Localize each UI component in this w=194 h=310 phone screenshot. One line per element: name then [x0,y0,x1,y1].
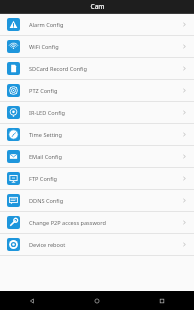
button[interactable]: Device reboot [0,234,194,255]
button[interactable]: SDCard Record Config [0,58,194,79]
staticText: Device reboot [29,241,66,249]
button[interactable]: WiFi Config [0,36,194,57]
button[interactable]: PTZ Config [0,80,194,101]
button[interactable]: Home [64,291,129,310]
button[interactable]: IR-LED Config [0,102,194,123]
staticText: FTP Config [29,175,58,183]
button[interactable]: Recent apps [129,291,194,310]
staticText: DDNS Config [29,197,64,205]
button[interactable]: Change P2P access password [0,212,194,233]
staticText: Cam [90,2,105,11]
button[interactable]: Alarm Config [0,14,194,35]
staticText: IR-LED Config [29,109,65,117]
staticText: PTZ Config [29,87,58,95]
button[interactable]: DDNS Config [0,190,194,211]
staticText: Alarm Config [29,21,64,29]
button[interactable]: FTP Config [0,168,194,189]
staticText: WiFi Config [29,43,59,51]
button[interactable]: EMail Config [0,146,194,167]
staticText: EMail Config [29,153,62,161]
staticText: Time Setting [29,131,62,139]
staticText: SDCard Record Config [29,65,87,73]
button[interactable]: Back [0,291,64,310]
button[interactable]: Time Setting [0,124,194,145]
staticText: Change P2P access password [29,219,106,227]
